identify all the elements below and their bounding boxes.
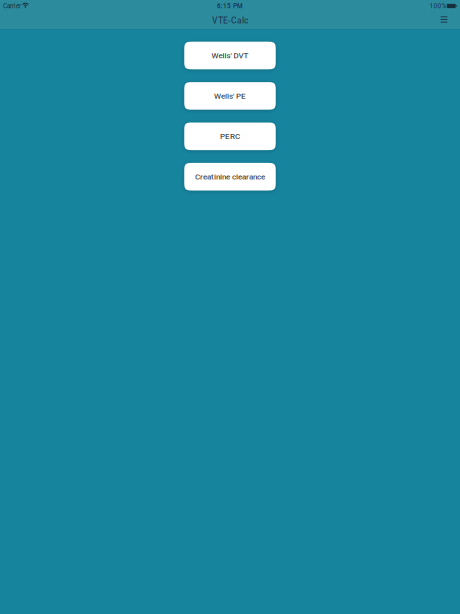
button[interactable]: Menu [433,12,455,29]
staticText: PERC [220,132,240,141]
button[interactable]: PERC [184,122,276,150]
staticText: 100% [429,2,446,10]
staticText: VTE-Calc [212,15,248,25]
staticText: Wells' DVT [211,51,248,60]
button[interactable]: Creatinine clearance [184,163,276,190]
button[interactable]: Wells' DVT [184,42,276,69]
staticText: Wells' PE [214,91,246,101]
staticText: Carrier [3,2,21,10]
button[interactable]: Wells' PE [184,82,276,110]
staticText: 6:15 PM [217,2,243,10]
staticText: Creatinine clearance [195,172,265,181]
